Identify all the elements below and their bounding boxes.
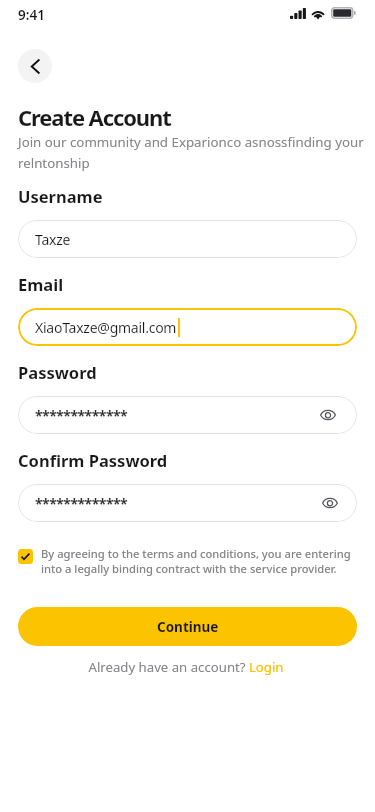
button[interactable]: Back xyxy=(18,49,52,83)
button[interactable]: Already have an account? Login xyxy=(88,658,284,676)
button[interactable]: Taxze xyxy=(18,220,357,258)
button[interactable]: Show password xyxy=(319,492,341,514)
staticText: Continue xyxy=(157,618,219,636)
button[interactable]: Continue xyxy=(18,607,357,646)
staticText: XiaoTaxze@gmail.com xyxy=(35,318,177,337)
button[interactable]: ************* xyxy=(18,396,357,434)
staticText: Password xyxy=(18,361,97,383)
staticText: Join our community and Exparionco asnoss… xyxy=(18,133,364,172)
button[interactable]: ************* xyxy=(18,484,357,522)
button[interactable]: XiaoTaxze@gmail.com xyxy=(18,308,357,346)
staticText: ************* xyxy=(35,494,128,513)
staticText: Taxze xyxy=(35,230,71,249)
staticText: By agreeing to the terms and conditions,… xyxy=(41,546,351,577)
button[interactable]: By agreeing to the terms and conditions,… xyxy=(18,546,359,577)
staticText: Username xyxy=(18,185,103,207)
staticText: ************* xyxy=(35,406,128,425)
staticText: Email xyxy=(18,273,64,295)
button[interactable]: Show password xyxy=(317,404,339,426)
staticText: Confirm Password xyxy=(18,449,168,471)
staticText: 9:41 xyxy=(18,6,45,24)
staticText: Create Account xyxy=(18,102,171,132)
